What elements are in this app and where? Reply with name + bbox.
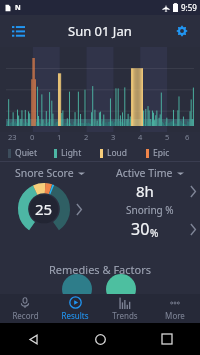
staticText: % xyxy=(150,226,159,240)
staticText: Quiet xyxy=(15,147,37,159)
button[interactable]: Sleep list xyxy=(6,19,30,43)
staticText: Remedies & Factors xyxy=(49,262,151,277)
button[interactable]: Snore Score xyxy=(0,166,100,258)
staticText: More xyxy=(165,310,185,321)
staticText: 0 xyxy=(30,132,35,142)
button[interactable]: Record xyxy=(0,294,50,323)
staticText: 4 xyxy=(138,132,143,142)
button[interactable]: Remedies & Factors xyxy=(0,258,200,280)
button[interactable]: 30 xyxy=(100,218,200,240)
button[interactable]: Recents xyxy=(154,326,180,352)
staticText: 5 xyxy=(165,132,170,142)
staticText: 3 xyxy=(111,132,116,142)
staticText: 30 xyxy=(131,218,150,240)
button[interactable]: Trends xyxy=(100,294,150,323)
staticText: Record xyxy=(12,310,39,321)
staticText: Trends xyxy=(112,310,138,321)
staticText: 2 xyxy=(84,132,89,142)
button[interactable]: Back xyxy=(20,326,46,352)
staticText: 25 xyxy=(35,199,53,219)
staticText: 1 xyxy=(57,132,62,142)
staticText: 6 xyxy=(185,132,190,142)
staticText: Sun 01 Jan xyxy=(68,22,132,40)
staticText: N xyxy=(15,3,21,13)
staticText: Light xyxy=(61,147,82,159)
staticText: Snore Score xyxy=(15,166,74,180)
staticText: Epic xyxy=(153,147,170,159)
staticText: Active Time xyxy=(116,166,173,180)
button[interactable]: Results xyxy=(50,294,100,323)
staticText: Loud xyxy=(107,147,128,159)
button[interactable]: Settings xyxy=(170,19,194,43)
staticText: 8h xyxy=(136,181,154,201)
staticText: Snoring % xyxy=(126,203,174,217)
button[interactable]: 8h xyxy=(100,181,200,201)
staticText: 9:59 xyxy=(181,2,197,13)
staticText: Results xyxy=(61,310,89,321)
button[interactable]: Home xyxy=(87,326,113,352)
staticText: 23 xyxy=(8,132,17,142)
button[interactable]: More xyxy=(150,294,200,323)
